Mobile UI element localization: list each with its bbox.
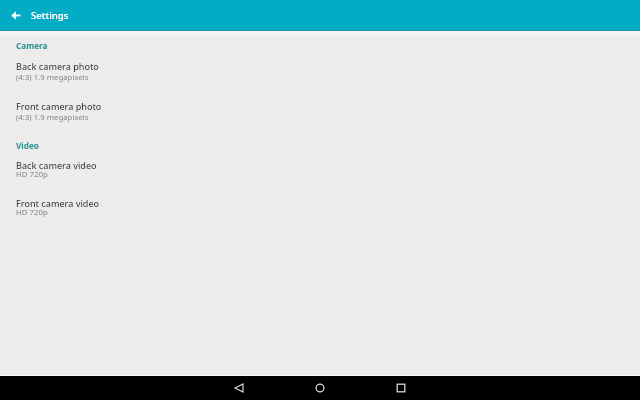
button[interactable]: Front camera photo — [0, 92, 640, 131]
button[interactable]: Back camera photo — [0, 55, 640, 91]
staticText: Back camera photo — [16, 60, 99, 72]
staticText: Video — [16, 140, 39, 151]
staticText: HD 720p — [16, 207, 48, 218]
staticText: Back camera video — [16, 159, 97, 171]
staticText: Front camera photo — [16, 100, 102, 112]
button[interactable]: Back camera video — [0, 155, 640, 189]
staticText: (4:3) 1.9 megapixels — [16, 72, 89, 83]
staticText: (4:3) 1.9 megapixels — [16, 112, 89, 123]
button[interactable]: Recents — [389, 376, 413, 400]
button[interactable]: Front camera video — [0, 190, 640, 228]
button[interactable]: Home — [308, 376, 332, 400]
staticText: Camera — [16, 40, 48, 51]
button[interactable]: Back — [227, 376, 251, 400]
staticText: Settings — [31, 9, 69, 22]
staticText: Front camera video — [16, 197, 100, 209]
staticText: HD 720p — [16, 169, 48, 180]
button[interactable]: Back — [0, 0, 31, 31]
